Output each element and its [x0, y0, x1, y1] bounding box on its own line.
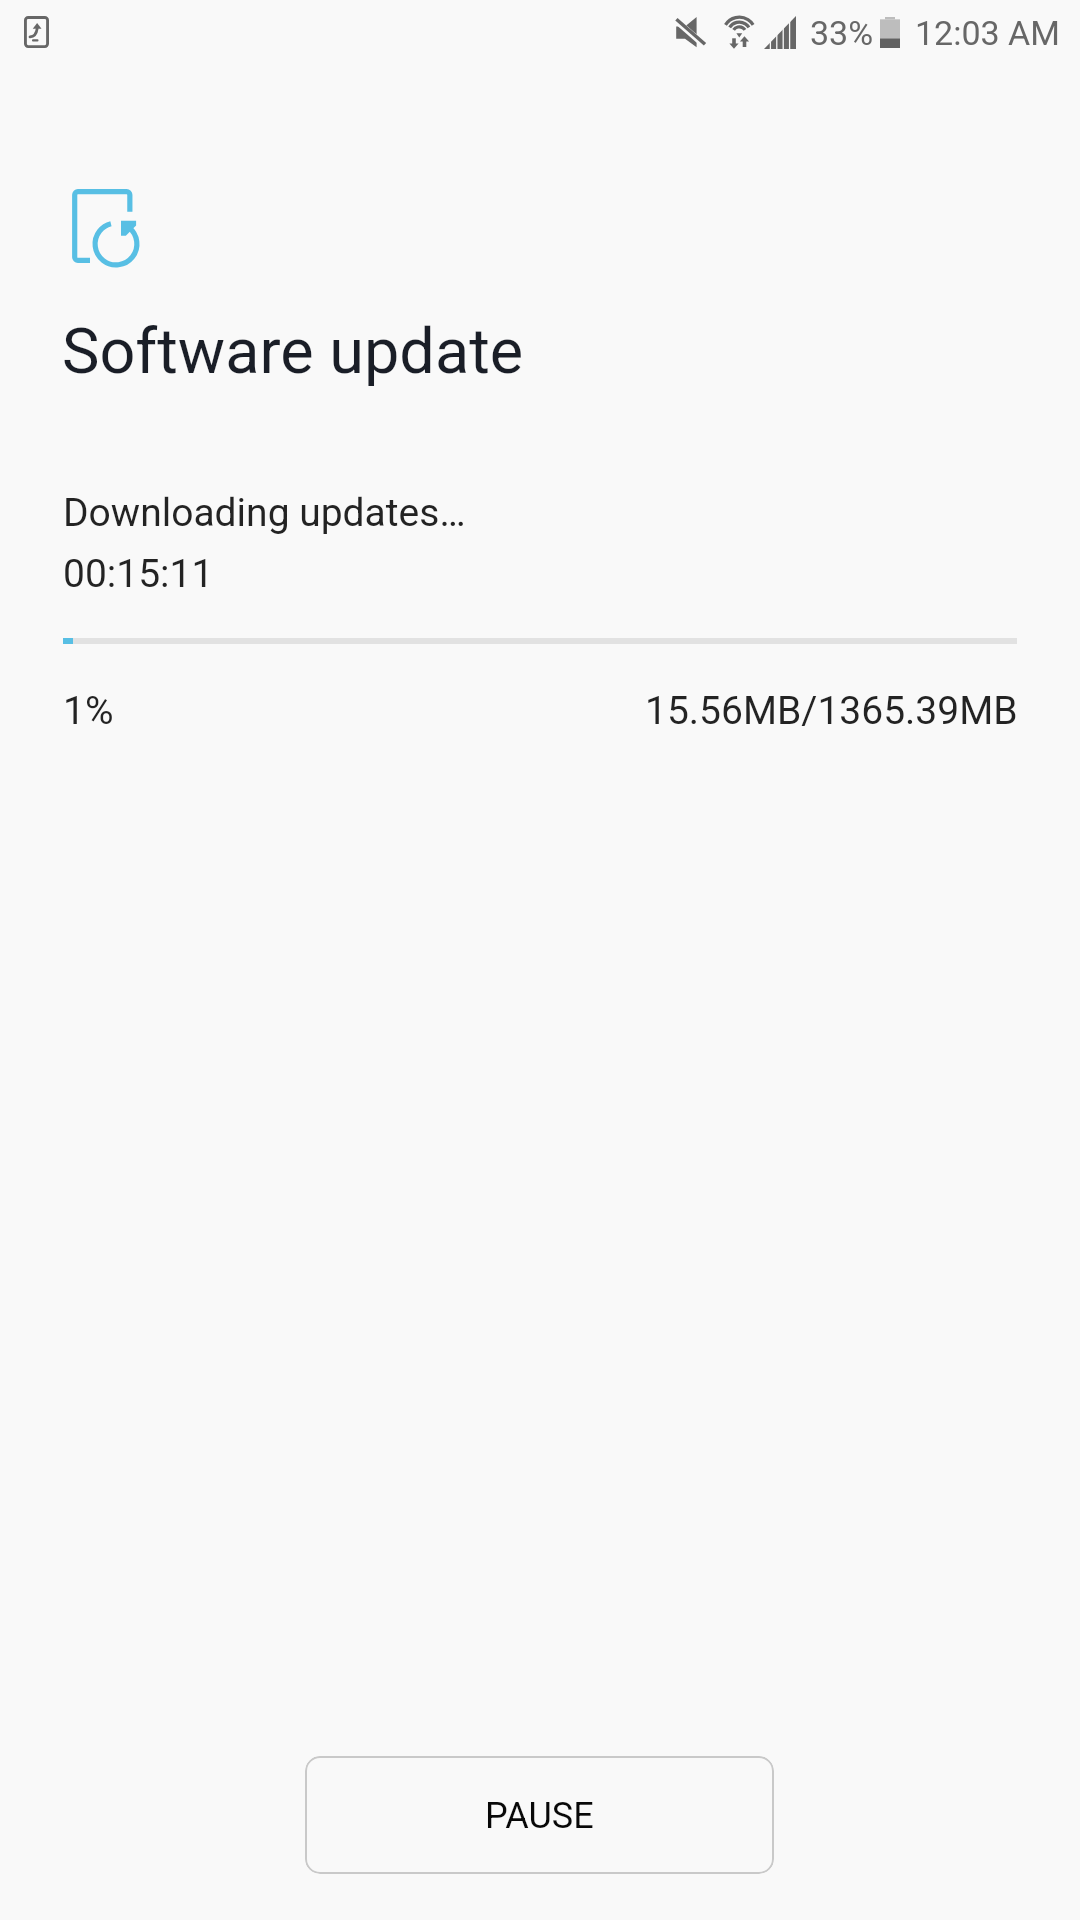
other: Wi-Fi connected	[724, 14, 755, 50]
staticText: 33%	[810, 13, 874, 53]
other: Software update notification	[24, 16, 49, 48]
staticText: 15.56MB/1365.39MB	[645, 688, 1018, 734]
staticText: PAUSE	[485, 1795, 594, 1837]
other: Sound off	[674, 14, 707, 50]
other: Software update	[72, 189, 140, 266]
staticText: 00:15:11	[63, 551, 214, 597]
staticText: Downloading updates…	[63, 490, 466, 536]
staticText: 12:03 AM	[915, 13, 1060, 53]
other: Battery 33 percent	[880, 17, 900, 48]
staticText: Software update	[62, 315, 524, 389]
staticText: 1%	[63, 688, 114, 734]
button[interactable]: PAUSE	[305, 1756, 774, 1874]
other: Mobile signal full	[764, 16, 796, 49]
